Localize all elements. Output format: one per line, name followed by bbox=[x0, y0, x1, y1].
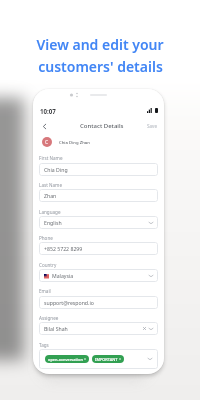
staticText: support@respond.io bbox=[44, 299, 94, 306]
button[interactable]: Bilal Shah bbox=[39, 322, 158, 335]
staticText: View and edit your bbox=[36, 35, 164, 54]
button[interactable]: +852 5722 8299 bbox=[39, 242, 158, 255]
staticText: Chia Ding Zhan bbox=[59, 139, 90, 145]
button[interactable]: Back bbox=[40, 122, 48, 130]
staticText: English bbox=[44, 219, 62, 226]
button[interactable]: Save bbox=[147, 123, 158, 129]
staticText: C bbox=[45, 139, 49, 146]
staticText: Last Name bbox=[39, 182, 62, 188]
staticText: Bilal Shah bbox=[44, 325, 68, 332]
staticText: Language bbox=[39, 209, 61, 215]
staticText: 10:07 bbox=[40, 107, 56, 115]
button[interactable]: Zhan bbox=[39, 189, 158, 202]
staticText: +852 5722 8299 bbox=[44, 245, 83, 252]
staticText: Country bbox=[39, 262, 57, 268]
staticText: IMPORTANT bbox=[95, 357, 118, 362]
button[interactable]: English bbox=[39, 216, 158, 229]
button[interactable]: Chia Ding bbox=[39, 163, 158, 176]
staticText: customers' details bbox=[38, 57, 163, 76]
staticText: Chia Ding bbox=[44, 166, 68, 173]
staticText: Zhan bbox=[44, 192, 57, 199]
staticText: First Name bbox=[39, 155, 63, 161]
button[interactable]: Malaysia bbox=[39, 269, 158, 282]
button[interactable]: support@respond.io bbox=[39, 296, 158, 309]
button[interactable]: C bbox=[33, 135, 164, 148]
staticText: Email bbox=[39, 288, 51, 294]
staticText: Assignee bbox=[39, 315, 59, 321]
staticText: Tags bbox=[39, 342, 49, 348]
staticText: Malaysia bbox=[52, 272, 74, 279]
staticText: Phone bbox=[39, 235, 53, 241]
button[interactable]: open-conversation bbox=[39, 349, 158, 369]
staticText: open-conversation bbox=[48, 357, 83, 362]
staticText: Contact Details bbox=[80, 122, 124, 130]
